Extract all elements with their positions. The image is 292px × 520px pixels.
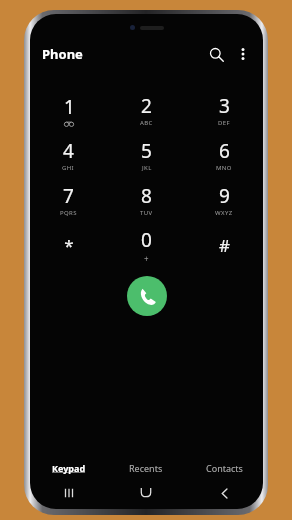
button[interactable]: More options [230,41,256,67]
button[interactable]: 0 [107,227,185,263]
staticText: ABC [140,119,153,127]
button[interactable]: 1 [30,92,107,128]
staticText: GHI [62,164,75,172]
staticText: Contacts [206,462,243,474]
staticText: 0 [141,227,152,253]
staticText: TUV [140,209,153,217]
button[interactable]: 8 [107,182,185,218]
staticText: 7 [63,183,74,209]
staticText: MNO [216,164,232,172]
button[interactable]: 2 [107,92,185,128]
button[interactable]: 6 [185,137,263,173]
staticText: 9 [219,183,230,209]
staticText: WXYZ [215,209,233,217]
button[interactable]: 5 [107,137,185,173]
staticText: # [219,234,230,257]
button[interactable]: 9 [185,182,263,218]
button[interactable]: * [30,227,107,263]
button[interactable]: Recent apps [30,480,107,506]
staticText: PQRS [60,209,77,217]
staticText: + [144,253,149,263]
staticText: Keypad [52,462,86,474]
staticText: Phone [42,45,83,63]
staticText: 2 [141,93,152,119]
staticText: 8 [141,183,152,209]
staticText: Recents [129,462,163,474]
button[interactable]: Home [107,480,185,506]
button[interactable]: 7 [30,182,107,218]
button[interactable]: 4 [30,137,107,173]
staticText: 3 [219,93,230,119]
staticText: DEF [218,119,231,127]
button[interactable]: Search [203,41,229,67]
button[interactable]: # [185,227,263,263]
button[interactable]: 3 [185,92,263,128]
button[interactable]: Call [127,276,167,316]
button[interactable]: Keypad [30,456,107,480]
staticText: 6 [219,138,230,164]
staticText: 1 [64,94,75,120]
button[interactable]: Back [185,480,263,506]
staticText: * [64,234,74,257]
staticText: 4 [63,138,74,164]
staticText: 5 [141,138,152,164]
button[interactable]: Contacts [185,456,263,480]
staticText: JKL [142,164,152,172]
button[interactable]: Recents [107,456,185,480]
